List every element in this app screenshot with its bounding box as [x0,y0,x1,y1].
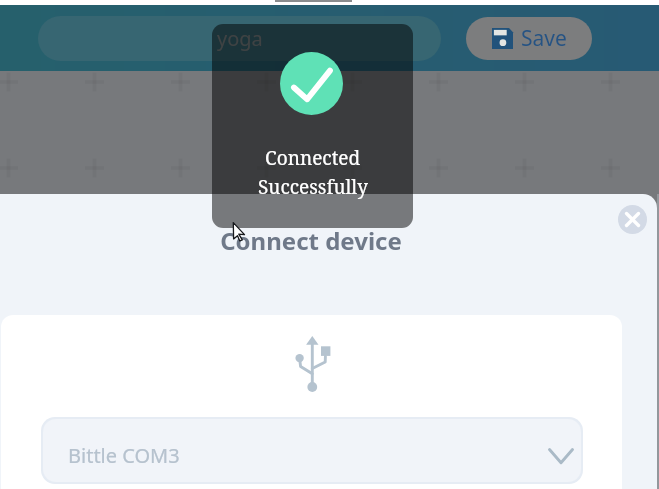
button[interactable]: Close [618,205,647,234]
staticText: Connected [265,145,361,171]
staticText: yoga [217,25,263,52]
staticText: Successfully [258,174,368,200]
button[interactable]: Save [466,17,592,60]
staticText: Save [521,24,567,53]
staticText: Bittle COM3 [68,442,180,469]
button[interactable]: yoga [38,16,441,61]
button[interactable]: Bittle COM3 [43,419,581,482]
staticText: Connect device [0,224,622,257]
